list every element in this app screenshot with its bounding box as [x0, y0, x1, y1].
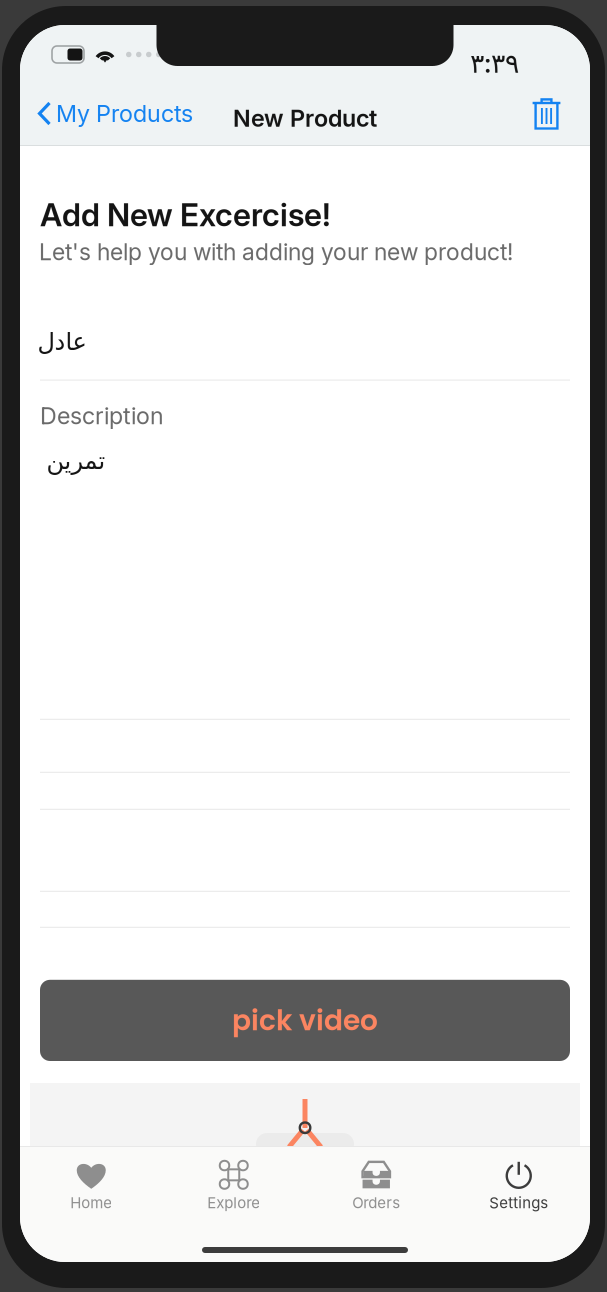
staticText: Let's help you with adding your new prod…: [39, 238, 513, 266]
staticText: ٣:٣٩: [470, 47, 519, 79]
staticText: Explore: [207, 1194, 260, 1212]
staticText: Orders: [352, 1194, 400, 1212]
staticText: New Product: [233, 104, 377, 132]
staticText: Settings: [489, 1194, 548, 1212]
staticText: Add New Excercise!: [40, 196, 331, 234]
staticText: عادل: [37, 328, 86, 356]
staticText: تمرين: [46, 447, 105, 475]
staticText: Description: [40, 402, 164, 430]
staticText: pick video: [232, 1001, 378, 1040]
staticText: My Products: [56, 99, 193, 128]
button[interactable]: Delete: [532, 91, 590, 136]
button[interactable]: Orders: [305, 1158, 447, 1214]
button[interactable]: Home: [20, 1158, 162, 1214]
staticText: Home: [70, 1194, 112, 1212]
button[interactable]: Explore: [162, 1158, 305, 1214]
button[interactable]: My Products: [20, 91, 193, 136]
button[interactable]: Settings: [447, 1158, 590, 1214]
button[interactable]: pick video: [40, 980, 570, 1061]
